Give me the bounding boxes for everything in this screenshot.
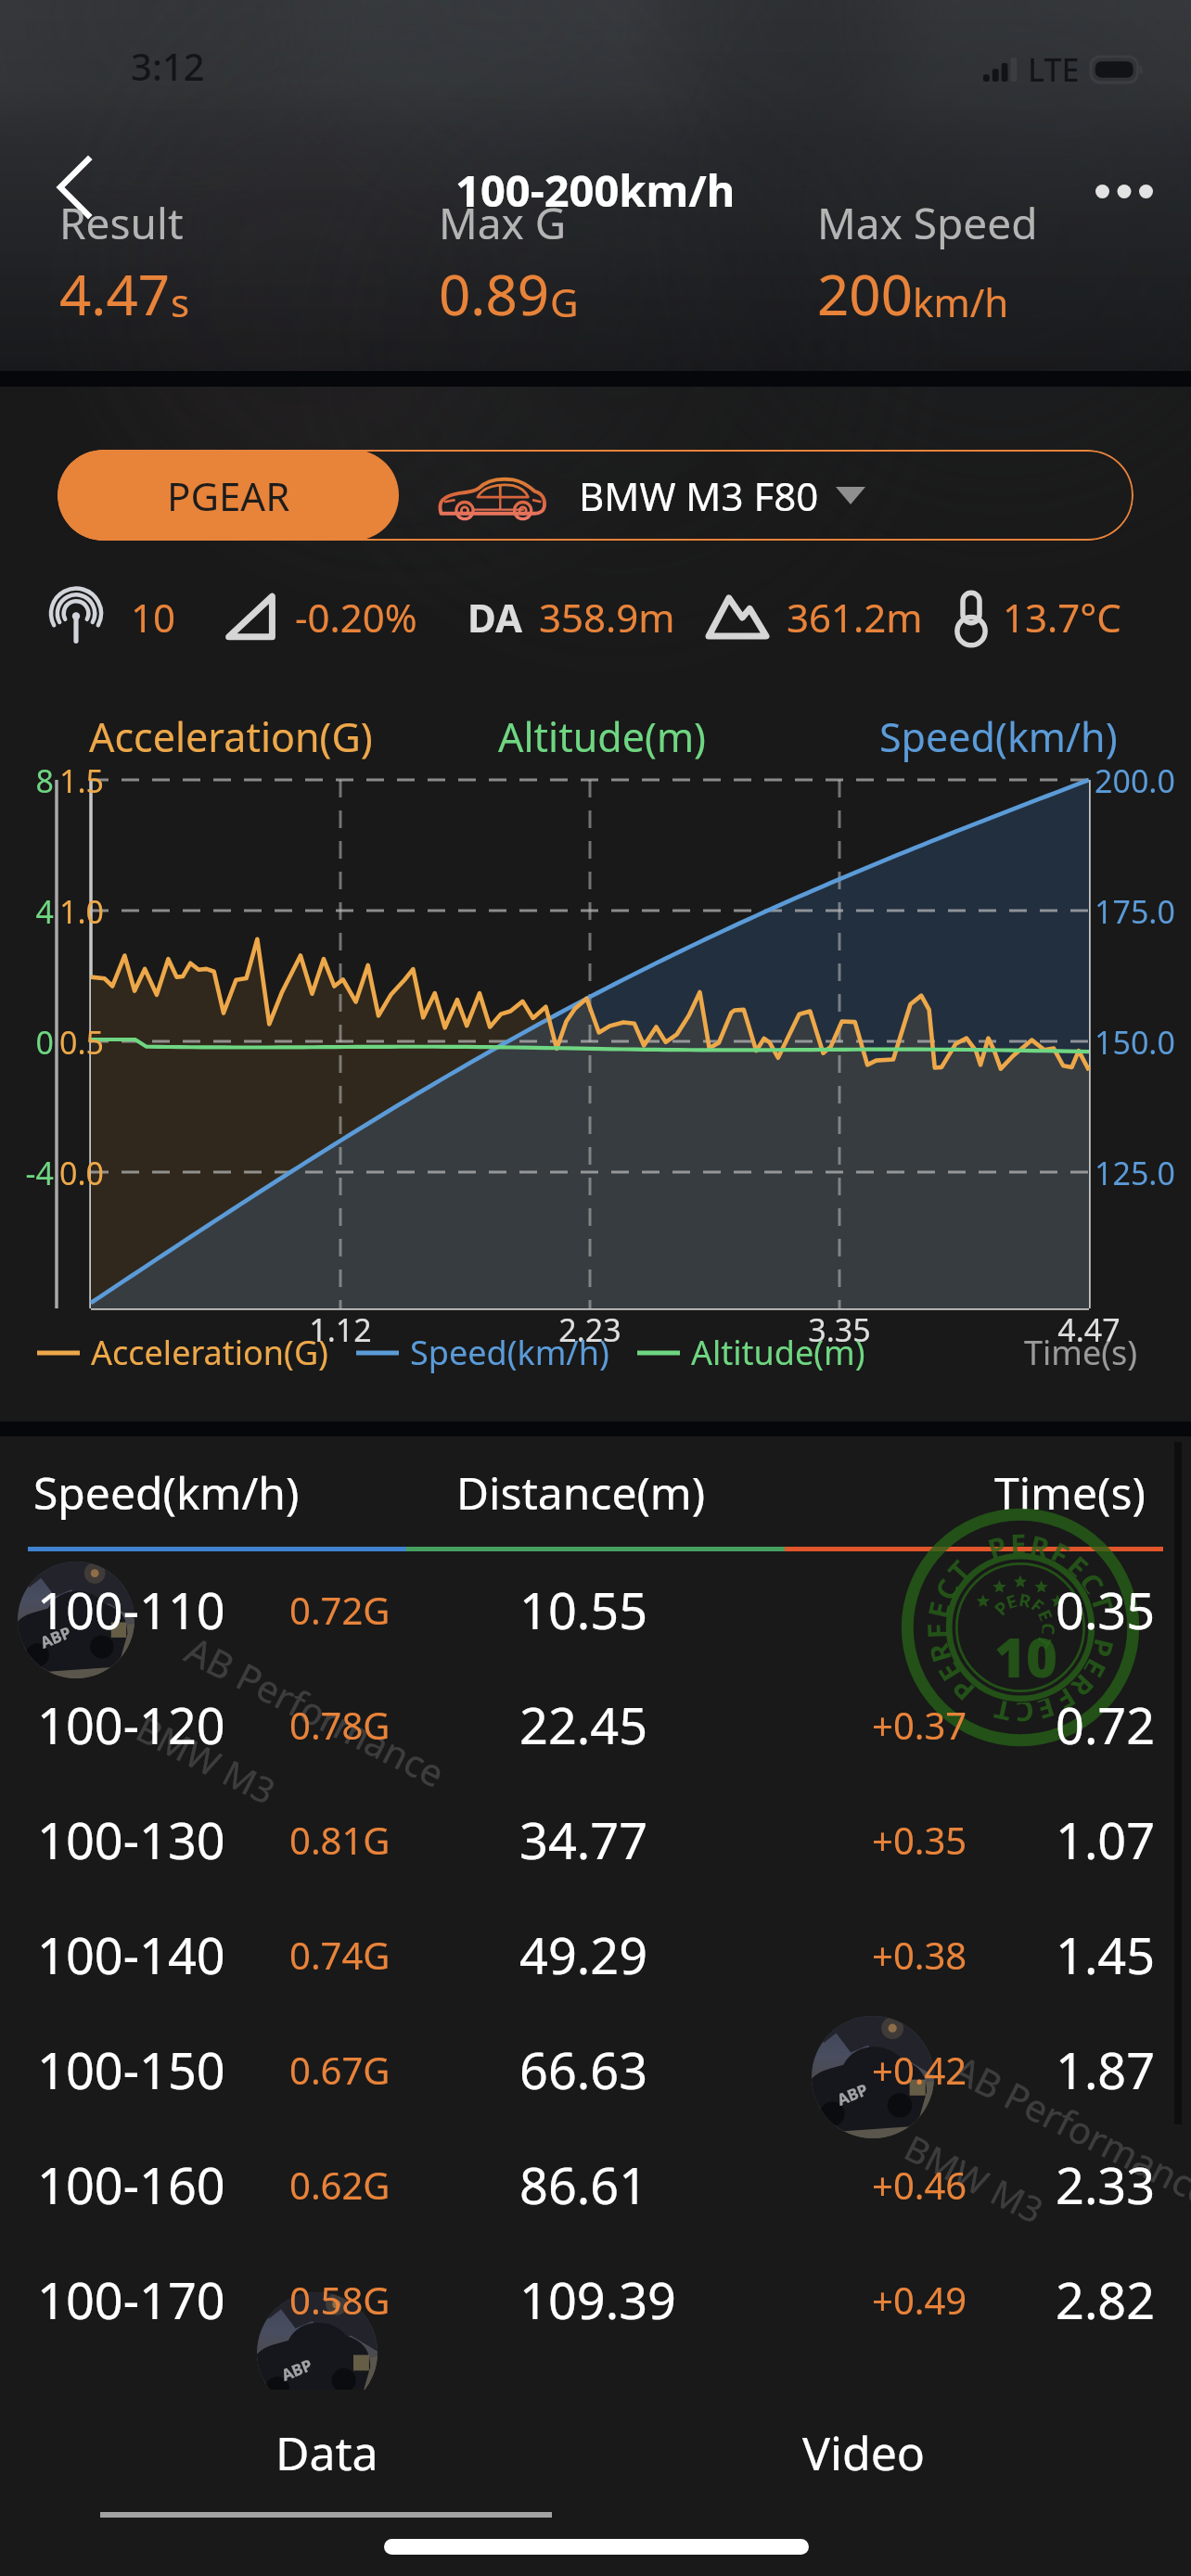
button[interactable]: 100-160 xyxy=(0,2127,1191,2242)
staticText: 200.0 xyxy=(1095,759,1175,802)
staticText: 13.7°C xyxy=(1003,591,1121,644)
staticText: 1.12 xyxy=(266,1308,415,1351)
staticText: Max Speed xyxy=(817,194,1038,252)
staticText: T xyxy=(1090,1589,1123,1613)
staticText: DA xyxy=(467,591,522,644)
staticText: 100-200km/h xyxy=(455,160,736,220)
staticText: 1.5 xyxy=(59,759,105,802)
staticText: 0.35 xyxy=(1056,1575,1156,1644)
staticText: E xyxy=(1037,1606,1059,1623)
staticText: E xyxy=(1003,1588,1019,1609)
button[interactable]: 100-140 xyxy=(0,1897,1191,2012)
staticText: 2.82 xyxy=(1056,2265,1156,2334)
staticText: 1.0 xyxy=(59,890,105,933)
staticText: 0.5 xyxy=(59,1021,105,1064)
staticText: 1.45 xyxy=(1056,1920,1156,1989)
staticText: 150.0 xyxy=(1095,1021,1175,1064)
staticText: Speed(km/h) xyxy=(879,709,1118,764)
staticText: 0.72G xyxy=(289,1585,391,1635)
staticText: P xyxy=(989,1595,1010,1617)
button[interactable]: Data xyxy=(58,2403,595,2503)
staticText: P xyxy=(943,1676,977,1710)
button[interactable]: 100-150 xyxy=(0,2012,1191,2127)
staticText: 100-130 xyxy=(37,1805,225,1874)
staticText: AB Performance xyxy=(178,1624,454,1798)
staticText: E xyxy=(1010,1524,1027,1553)
button[interactable]: 100-170 xyxy=(0,2242,1191,2357)
staticText: BMW M3 F80 xyxy=(579,469,819,522)
staticText: 10.55 xyxy=(519,1575,648,1644)
staticText: F xyxy=(1030,1593,1049,1614)
staticText: 0.67G xyxy=(289,2045,391,2095)
staticText: 100-110 xyxy=(37,1575,225,1644)
staticText: F xyxy=(918,1622,947,1640)
staticText: C xyxy=(1015,1702,1035,1732)
button[interactable]: PGEAR xyxy=(58,450,1133,541)
staticText: R xyxy=(1028,1525,1054,1558)
staticText: 0.89 xyxy=(439,256,550,332)
staticText: P xyxy=(1091,1637,1124,1662)
staticText: Speed(km/h) xyxy=(33,1462,300,1523)
staticText: Speed(km/h) xyxy=(410,1330,609,1375)
staticText: PGEAR xyxy=(167,469,290,522)
staticText: AB Performance xyxy=(946,2043,1191,2217)
staticText: 1.87 xyxy=(1056,2035,1156,2104)
staticText: Time(s) xyxy=(1024,1330,1138,1375)
button[interactable]: Back xyxy=(33,147,115,228)
staticText: BMW M3 xyxy=(129,1704,284,1815)
staticText: 0.81G xyxy=(289,1815,391,1865)
staticText: R xyxy=(919,1640,952,1667)
staticText: 86.61 xyxy=(519,2150,648,2219)
staticText: 100-150 xyxy=(37,2035,225,2104)
staticText: T xyxy=(1035,1634,1057,1653)
staticText: E xyxy=(1035,1697,1059,1729)
staticText: 175.0 xyxy=(1095,890,1175,933)
staticText: E xyxy=(1066,1547,1098,1579)
staticText: G xyxy=(550,275,579,328)
staticText: E xyxy=(918,1597,950,1620)
staticText: -4 xyxy=(0,1152,54,1194)
staticText: 10 xyxy=(994,1620,1057,1693)
staticText: +0.49 xyxy=(872,2275,967,2325)
staticText: 22.45 xyxy=(519,1690,648,1759)
staticText: 0.74G xyxy=(289,1930,391,1980)
staticText: 0 xyxy=(0,1021,54,1064)
button[interactable]: More options xyxy=(1080,147,1169,236)
staticText: T xyxy=(939,1552,972,1583)
staticText: 125.0 xyxy=(1095,1152,1175,1194)
staticText: 1.07 xyxy=(1056,1805,1156,1874)
staticText: ABP xyxy=(37,1621,74,1653)
button[interactable]: 100-110 xyxy=(0,1552,1191,1667)
staticText: 3.35 xyxy=(765,1308,914,1351)
staticText: Acceleration(G) xyxy=(89,709,373,764)
staticText: Distance(m) xyxy=(456,1462,706,1523)
staticText: ABP xyxy=(834,2079,871,2110)
staticText: 0.0 xyxy=(59,1152,105,1194)
staticText: R xyxy=(1069,1672,1103,1706)
staticText: 34.77 xyxy=(519,1805,648,1874)
staticText: F xyxy=(1054,1686,1083,1720)
staticText: 100-120 xyxy=(37,1690,225,1759)
staticText: s xyxy=(171,275,190,328)
staticText: 100-140 xyxy=(37,1920,225,1989)
staticText: R xyxy=(1018,1587,1034,1608)
staticText: Max G xyxy=(439,194,567,252)
staticText: 0.58G xyxy=(289,2275,391,2325)
button[interactable]: Video xyxy=(595,2403,1133,2503)
button[interactable]: 100-130 xyxy=(0,1782,1191,1897)
staticText: 4 xyxy=(0,890,54,933)
staticText: ABP xyxy=(278,2354,315,2386)
staticText: F xyxy=(1049,1532,1077,1566)
staticText: 0.72 xyxy=(1056,1690,1156,1759)
staticText: 200 xyxy=(817,256,913,332)
staticText: 0.62G xyxy=(289,2160,391,2210)
staticText: 2.33 xyxy=(1056,2150,1156,2219)
staticText: E xyxy=(929,1660,962,1689)
button[interactable]: 100-120 xyxy=(0,1667,1191,1782)
staticText: 100-170 xyxy=(37,2265,225,2334)
staticText: 0.78G xyxy=(289,1700,391,1750)
staticText: E xyxy=(1083,1656,1116,1685)
staticText: 100-160 xyxy=(37,2150,225,2219)
button[interactable]: PGEAR xyxy=(58,450,399,541)
staticText: C xyxy=(1079,1565,1114,1596)
